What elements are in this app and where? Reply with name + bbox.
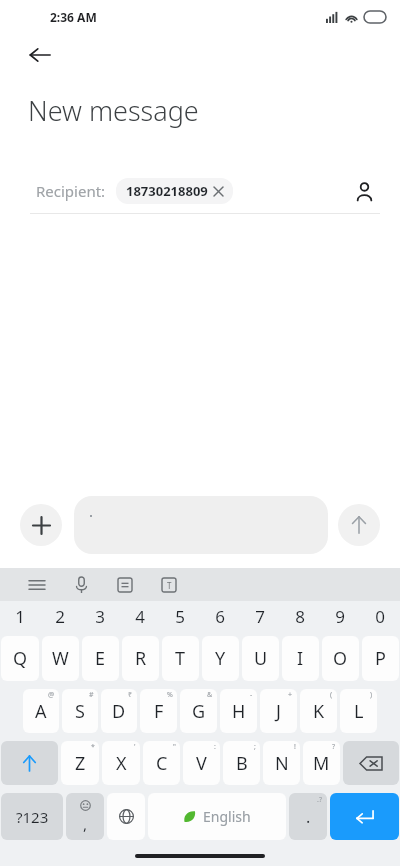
staticText: ?: [332, 742, 336, 752]
button[interactable]: ?123: [1, 793, 63, 840]
button[interactable]: N: [263, 741, 300, 785]
staticText: K: [313, 699, 325, 724]
staticText: E: [95, 646, 106, 671]
staticText: (: [330, 690, 333, 700]
button[interactable]: Send: [338, 504, 380, 546]
button[interactable]: U: [242, 636, 279, 681]
button[interactable]: 4: [120, 601, 160, 631]
button[interactable]: A: [23, 689, 59, 733]
staticText: A: [35, 699, 47, 724]
staticText: ₹: [128, 690, 133, 700]
staticText: 4: [135, 605, 145, 628]
button[interactable]: 8: [280, 601, 320, 631]
button[interactable]: Clipboard: [110, 570, 140, 600]
button[interactable]: Enter: [330, 793, 399, 840]
button[interactable]: Text tools: [154, 570, 184, 600]
button[interactable]: B: [223, 741, 260, 785]
button[interactable]: D: [101, 689, 137, 733]
button[interactable]: J: [260, 689, 297, 733]
button[interactable]: C: [143, 741, 180, 785]
button[interactable]: M: [303, 741, 340, 785]
button[interactable]: Backspace: [343, 741, 399, 785]
button[interactable]: W: [42, 636, 79, 681]
staticText: D: [112, 699, 126, 724]
staticText: 3: [95, 605, 105, 628]
staticText: !: [294, 742, 296, 752]
button[interactable]: Change language: [107, 793, 145, 840]
button[interactable]: Period: [289, 793, 327, 840]
button[interactable]: 1: [0, 601, 40, 631]
button[interactable]: P: [362, 636, 399, 681]
staticText: ): [370, 690, 373, 700]
button[interactable]: K: [300, 689, 337, 733]
staticText: 18730218809: [126, 182, 208, 200]
staticText: New message: [28, 92, 199, 129]
staticText: ": [173, 742, 176, 752]
staticText: +: [288, 690, 293, 700]
staticText: ': [134, 742, 136, 752]
button[interactable]: S: [62, 689, 98, 733]
button[interactable]: Emoji and comma: [66, 793, 104, 840]
button[interactable]: Shift: [1, 741, 58, 785]
staticText: H: [232, 699, 246, 724]
button[interactable]: T: [162, 636, 199, 681]
staticText: B: [236, 751, 248, 776]
staticText: -: [250, 690, 253, 700]
button[interactable]: F: [140, 689, 177, 733]
button[interactable]: Z: [61, 741, 99, 785]
staticText: ?123: [16, 807, 49, 827]
button[interactable]: O: [322, 636, 359, 681]
staticText: X: [116, 751, 127, 776]
button[interactable]: Add attachment: [20, 504, 62, 546]
staticText: 8: [295, 605, 305, 628]
button[interactable]: 5: [160, 601, 200, 631]
button[interactable]: Voice input: [66, 570, 96, 600]
staticText: T: [175, 646, 186, 671]
staticText: :: [214, 742, 216, 752]
button[interactable]: Y: [202, 636, 239, 681]
staticText: 1: [15, 605, 25, 628]
button[interactable]: English: [148, 793, 286, 840]
button[interactable]: 18730218809: [116, 178, 233, 204]
button[interactable]: 3: [80, 601, 120, 631]
button[interactable]: Contacts: [346, 173, 382, 209]
staticText: L: [354, 699, 364, 724]
button[interactable]: H: [220, 689, 257, 733]
staticText: W: [52, 646, 69, 671]
button[interactable]: 9: [320, 601, 360, 631]
button[interactable]: Q: [1, 636, 39, 681]
staticText: I: [297, 646, 304, 671]
button[interactable]: Back: [18, 34, 62, 76]
staticText: 9: [335, 605, 345, 628]
button[interactable]: 6: [200, 601, 240, 631]
button[interactable]: V: [183, 741, 220, 785]
staticText: English: [203, 807, 251, 826]
button[interactable]: I: [282, 636, 319, 681]
staticText: Y: [215, 646, 226, 671]
staticText: Z: [75, 751, 86, 776]
button[interactable]: R: [122, 636, 159, 681]
staticText: #: [89, 690, 94, 700]
button[interactable]: 2: [40, 601, 80, 631]
button[interactable]: 0: [360, 601, 400, 631]
staticText: .: [306, 806, 311, 828]
button[interactable]: E: [82, 636, 119, 681]
staticText: S: [75, 699, 85, 724]
staticText: C: [156, 751, 168, 776]
staticText: 6: [215, 605, 225, 628]
button[interactable]: G: [180, 689, 217, 733]
staticText: &: [207, 690, 213, 700]
staticText: F: [154, 699, 164, 724]
button[interactable]: L: [340, 689, 377, 733]
staticText: 2: [55, 605, 65, 628]
staticText: ;: [254, 742, 256, 752]
button[interactable]: X: [102, 741, 140, 785]
staticText: 7: [255, 605, 265, 628]
button[interactable]: Menu: [22, 570, 52, 600]
staticText: ,: [83, 814, 88, 834]
staticText: R: [135, 646, 147, 671]
button[interactable]: 7: [240, 601, 280, 631]
staticText: *: [91, 742, 95, 752]
staticText: V: [196, 751, 207, 776]
